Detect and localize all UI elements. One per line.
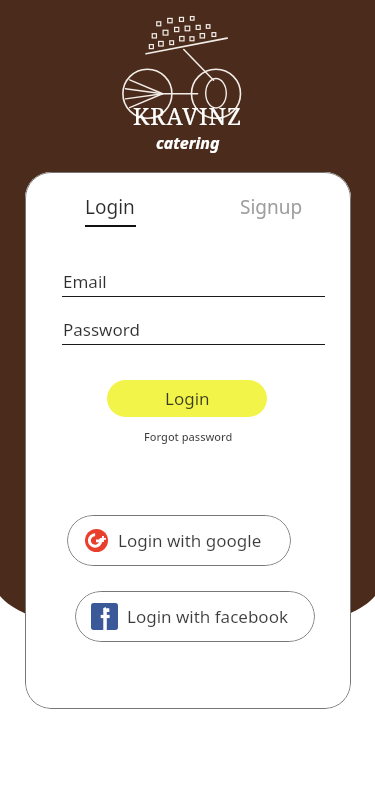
- staticText: Signup: [240, 194, 303, 220]
- button[interactable]: Forgot password: [138, 426, 239, 447]
- staticText: Password: [63, 318, 140, 341]
- button[interactable]: Facebook: [75, 591, 315, 642]
- staticText: KRAVINZ: [133, 100, 243, 131]
- staticText: Login with google: [118, 529, 262, 552]
- button[interactable]: Login: [107, 380, 267, 417]
- other: Facebook: [91, 603, 118, 630]
- staticText: Login: [165, 387, 210, 410]
- button[interactable]: Google: [67, 515, 291, 566]
- staticText: Email: [63, 270, 107, 293]
- button[interactable]: Signup: [238, 194, 305, 220]
- staticText: catering: [156, 132, 220, 154]
- staticText: Login with facebook: [127, 605, 289, 628]
- staticText: Login: [85, 194, 135, 220]
- staticText: Forgot password: [144, 429, 233, 444]
- button[interactable]: Email: [62, 270, 325, 297]
- button[interactable]: Login: [83, 194, 138, 227]
- other: Google: [85, 529, 108, 552]
- button[interactable]: Password: [62, 318, 325, 345]
